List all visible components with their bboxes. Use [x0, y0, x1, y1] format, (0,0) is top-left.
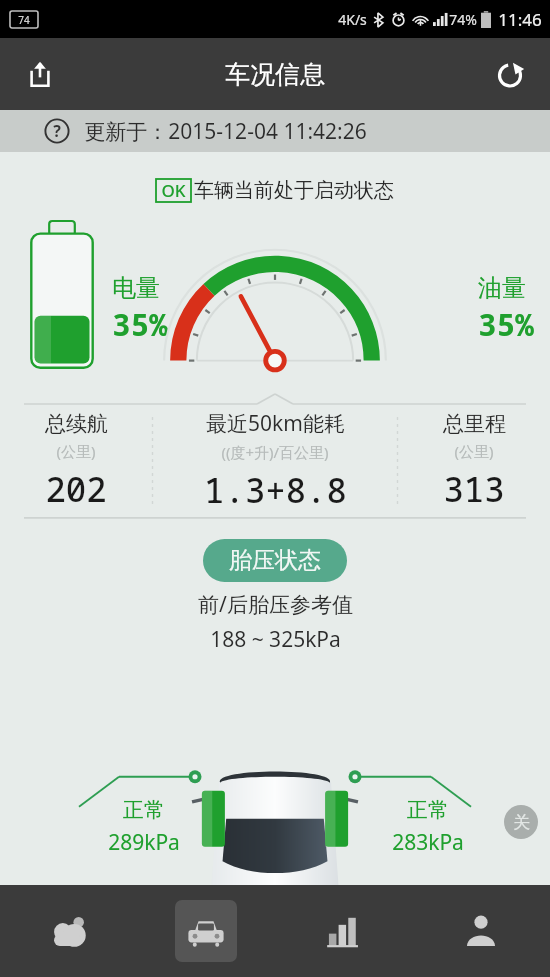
button[interactable]: 胎压状态 — [203, 539, 347, 582]
staticText: 35% — [478, 303, 534, 345]
staticText: 正常 — [123, 797, 165, 823]
staticText: 289kPa — [108, 828, 180, 857]
staticText: 总续航 — [45, 411, 108, 437]
button[interactable]: 天气 — [0, 885, 137, 977]
button[interactable]: 我的 — [412, 885, 550, 977]
staticText: 总里程 — [443, 411, 506, 437]
staticText: 188 ~ 325kPa — [210, 625, 341, 654]
button[interactable]: 车辆 — [137, 885, 274, 977]
staticText: 11:46 — [498, 8, 542, 31]
button[interactable]: 刷新 — [486, 50, 534, 98]
button[interactable]: 统计 — [274, 885, 412, 977]
button[interactable]: 关闭 — [504, 805, 538, 839]
staticText: 关 — [513, 812, 530, 833]
staticText: (公里) — [454, 441, 494, 461]
staticText: 胎压状态 — [229, 546, 321, 575]
staticText: 4K/s — [338, 10, 367, 29]
button[interactable]: 帮助 — [0, 110, 550, 152]
staticText: 1.3+8.8 — [204, 467, 347, 513]
staticText: 更新于：2015-12-04 11:42:26 — [84, 117, 367, 146]
staticText: 74% — [449, 10, 477, 29]
staticText: 最近50km能耗 — [206, 409, 345, 438]
staticText: 油量 — [478, 273, 526, 303]
staticText: 74 — [18, 13, 30, 27]
button[interactable]: 总续航 — [0, 405, 152, 517]
staticText: (公里) — [56, 441, 96, 461]
button[interactable]: 总里程 — [398, 405, 550, 517]
staticText: 车况信息 — [225, 59, 325, 90]
other: 帮助 — [44, 118, 70, 144]
staticText: 35% — [112, 303, 168, 345]
staticText: OK — [161, 179, 186, 202]
staticText: ? — [53, 120, 61, 142]
staticText: 电量 — [112, 273, 160, 303]
staticText: ((度+升)/百公里) — [221, 442, 329, 462]
staticText: 313 — [443, 466, 505, 512]
staticText: 正常 — [407, 797, 449, 823]
staticText: 前/后胎压参考值 — [198, 590, 353, 619]
button[interactable]: 最近50km能耗 — [153, 405, 397, 517]
staticText: 车辆当前处于启动状态 — [194, 178, 394, 203]
staticText: 202 — [45, 466, 107, 512]
button[interactable]: 分享 — [16, 50, 64, 98]
staticText: 283kPa — [392, 828, 464, 857]
